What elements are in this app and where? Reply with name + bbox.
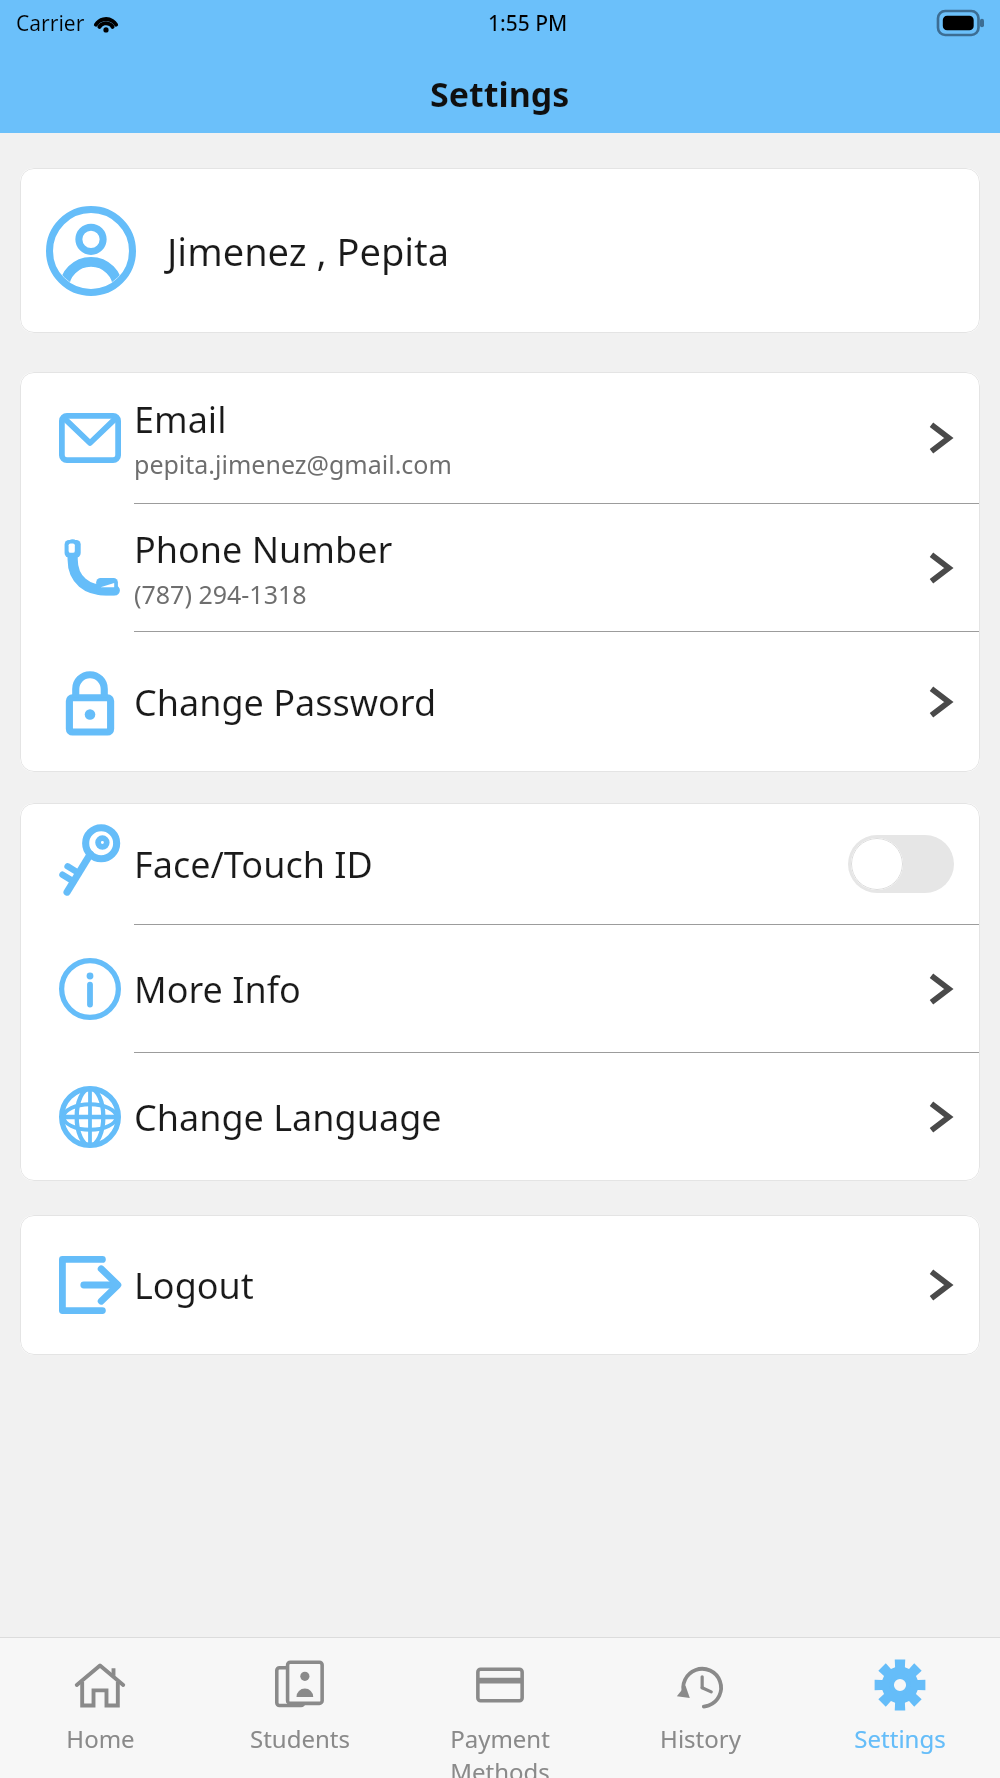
staticText: Change Language: [134, 1093, 442, 1142]
staticText: Phone Number: [134, 525, 393, 574]
button[interactable]: Change Language: [20, 1053, 980, 1181]
staticText: Settings: [430, 71, 570, 117]
staticText: (787) 294-1318: [134, 577, 307, 611]
button[interactable]: Face/Touch ID toggle: [848, 835, 954, 893]
button[interactable]: Face/Touch ID: [20, 803, 980, 925]
staticText: Change Password: [134, 678, 437, 727]
staticText: Payment Methods: [400, 1722, 600, 1778]
button[interactable]: Students: [200, 1638, 400, 1778]
button[interactable]: History: [600, 1638, 800, 1778]
staticText: More Info: [134, 965, 301, 1014]
button[interactable]: Change Password: [20, 632, 980, 772]
staticText: Settings: [854, 1722, 946, 1755]
button[interactable]: Settings: [800, 1638, 1000, 1778]
staticText: Jimenez , Pepita: [167, 225, 450, 277]
staticText: Face/Touch ID: [134, 840, 373, 889]
button[interactable]: More Info: [20, 925, 980, 1053]
button[interactable]: Home: [0, 1638, 200, 1778]
button[interactable]: Logout: [20, 1215, 980, 1355]
staticText: pepita.jimenez@gmail.com: [134, 447, 452, 481]
staticText: Home: [66, 1722, 135, 1755]
staticText: History: [660, 1722, 741, 1755]
staticText: Logout: [134, 1261, 254, 1310]
staticText: Carrier: [16, 9, 85, 38]
button[interactable]: Jimenez , Pepita: [20, 168, 980, 333]
staticText: Email: [134, 395, 227, 444]
staticText: Students: [250, 1722, 350, 1755]
staticText: 1:55 PM: [488, 9, 568, 38]
button[interactable]: Phone Number: [20, 504, 980, 632]
button[interactable]: Email: [20, 372, 980, 504]
button[interactable]: Payment Methods: [400, 1638, 600, 1778]
